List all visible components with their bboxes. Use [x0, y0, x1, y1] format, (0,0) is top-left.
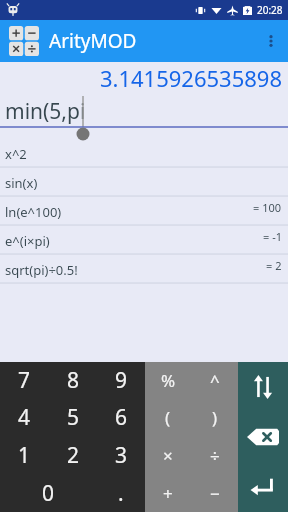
staticText: sqrt(pi)÷0.5! — [5, 261, 78, 279]
staticText: 6 — [115, 403, 128, 432]
button[interactable]: 7 — [0, 362, 49, 399]
staticText: . — [118, 479, 124, 508]
staticText: 5 — [67, 403, 80, 432]
staticText: + — [163, 482, 173, 505]
staticText: ArityMOD — [49, 28, 137, 54]
button[interactable]: More options — [254, 20, 288, 62]
staticText: ^ — [210, 369, 220, 392]
staticText: e^(i×pi) — [5, 232, 50, 250]
staticText: 2 — [67, 441, 80, 470]
button[interactable]: 1 — [0, 436, 49, 474]
staticText: x^2 — [5, 145, 27, 163]
staticText: 1 — [18, 441, 31, 470]
button[interactable]: 2 — [49, 436, 97, 474]
button[interactable]: sqrt(pi)÷0.5! — [0, 255, 288, 284]
button[interactable]: 9 — [97, 362, 145, 399]
staticText: % — [161, 369, 176, 392]
staticText: − — [210, 482, 220, 505]
staticText: 4 — [18, 403, 31, 432]
button[interactable]: 5 — [49, 399, 97, 436]
staticText: ÷ — [210, 444, 220, 467]
staticText: = -1 — [263, 229, 282, 244]
button[interactable]: 4 — [0, 399, 49, 436]
button[interactable]: . — [97, 474, 145, 512]
staticText: ( — [165, 406, 171, 429]
button[interactable]: ln(e^100) — [0, 197, 288, 226]
staticText: min(5,pi — [5, 97, 86, 126]
button[interactable]: 8 — [49, 362, 97, 399]
staticText: ln(e^100) — [5, 203, 62, 221]
staticText: 3.1415926535898 — [99, 63, 282, 93]
button[interactable]: + — [145, 474, 191, 512]
button[interactable]: 3 — [97, 436, 145, 474]
button[interactable]: Scroll history — [238, 362, 288, 412]
staticText: 8 — [67, 366, 80, 395]
button[interactable]: sin(x) — [0, 168, 288, 197]
button[interactable]: x^2 — [0, 139, 288, 168]
button[interactable]: ÷ — [191, 436, 238, 474]
staticText: 0 — [42, 479, 55, 508]
button[interactable]: e^(i×pi) — [0, 226, 288, 255]
staticText: 20:28 — [257, 3, 283, 17]
button[interactable]: ( — [145, 399, 191, 436]
staticText: 3 — [115, 441, 128, 470]
button[interactable]: Backspace — [238, 412, 288, 462]
staticText: 9 — [115, 366, 128, 395]
button[interactable]: ) — [191, 399, 238, 436]
button[interactable]: ^ — [191, 362, 238, 399]
staticText: × — [163, 444, 173, 467]
button[interactable]: % — [145, 362, 191, 399]
button[interactable]: × — [145, 436, 191, 474]
staticText: sin(x) — [5, 174, 38, 192]
button[interactable]: 0 — [0, 474, 97, 512]
staticText: = 100 — [253, 200, 282, 215]
button[interactable]: 6 — [97, 399, 145, 436]
button[interactable]: Enter — [238, 462, 288, 512]
staticText: = 2 — [266, 258, 282, 273]
staticText: ) — [212, 406, 218, 429]
staticText: 7 — [18, 366, 31, 395]
button[interactable]: − — [191, 474, 238, 512]
